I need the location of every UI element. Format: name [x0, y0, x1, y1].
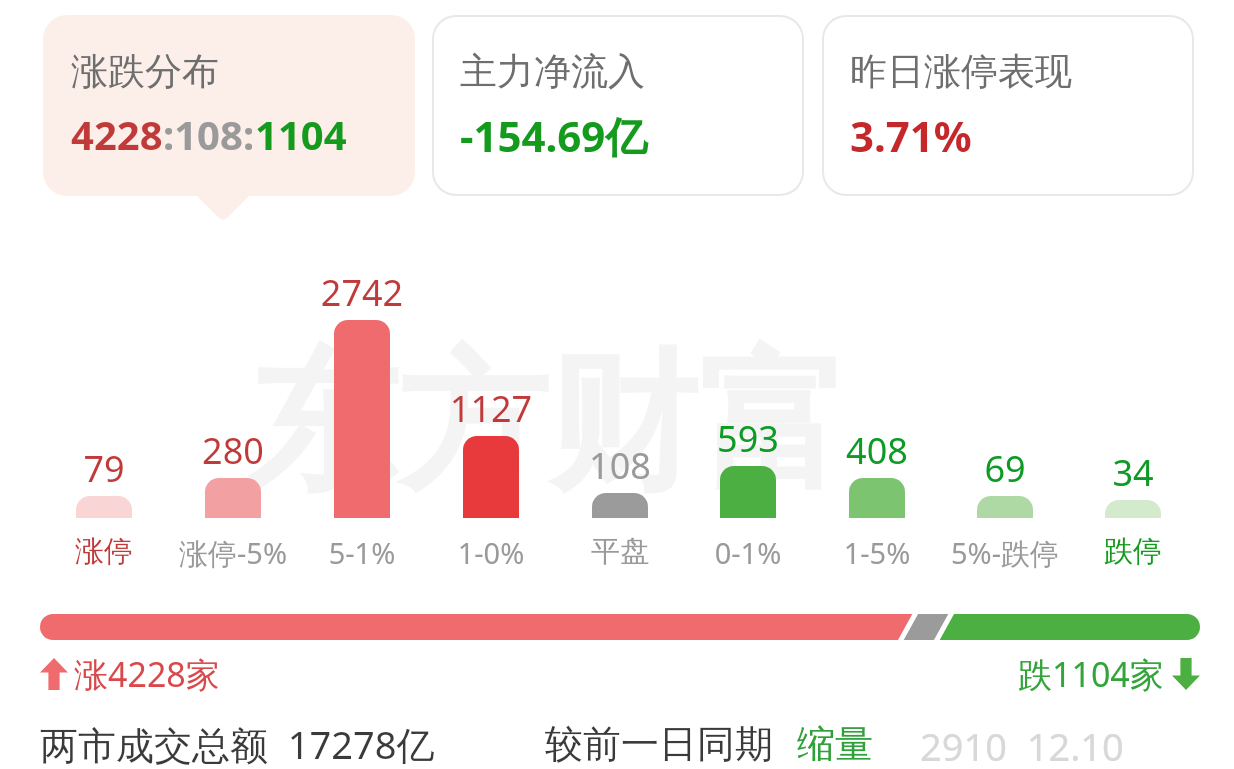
button[interactable] [1105, 500, 1161, 518]
button[interactable]: 0-1% [670, 533, 826, 572]
staticText: 涨4228家 [74, 651, 220, 697]
staticText: -154.69亿 [460, 107, 648, 164]
button[interactable]: 昨日涨停表现 [824, 17, 1192, 194]
staticText: 5%-跌停 [927, 533, 1083, 573]
staticText: 较前一日同期 [545, 720, 773, 768]
staticText: 108 [550, 441, 690, 490]
staticText: 东方财富 [248, 330, 848, 519]
staticText: 5-1% [284, 533, 440, 572]
staticText: 4228 [71, 107, 163, 161]
button[interactable]: 平盘 [542, 533, 698, 570]
staticText: 昨日涨停表现 [850, 48, 1072, 95]
button[interactable] [463, 436, 519, 518]
staticText: :108: [163, 107, 255, 161]
button[interactable] [592, 493, 648, 518]
button[interactable]: 涨停 [26, 533, 182, 570]
button[interactable]: 涨跌分布 [43, 15, 415, 196]
button[interactable]: 5%-跌停 [927, 533, 1083, 573]
button[interactable] [334, 320, 390, 518]
staticText: 2742 [292, 268, 432, 317]
staticText: 1-5% [799, 533, 955, 572]
staticText: 280 [163, 426, 303, 475]
other: Down [1172, 658, 1200, 690]
button[interactable] [76, 496, 132, 518]
button[interactable] [849, 478, 905, 518]
button[interactable]: 涨停-5% [155, 533, 311, 573]
staticText: 两市成交总额 17278亿 [40, 718, 435, 769]
other: Up [40, 658, 68, 690]
button[interactable]: 跌停 [1055, 533, 1211, 570]
staticText: 69 [935, 444, 1075, 493]
staticText: 平盘 [542, 533, 698, 570]
staticText: 408 [807, 426, 947, 475]
staticText: 3.71% [850, 107, 972, 164]
button[interactable] [40, 614, 1200, 640]
staticText: 0-1% [670, 533, 826, 572]
button[interactable]: 主力净流入 [434, 17, 802, 194]
button[interactable] [205, 478, 261, 518]
button[interactable]: 5-1% [284, 533, 440, 572]
staticText: 79 [34, 444, 174, 493]
staticText: 涨跌分布 [71, 48, 219, 95]
staticText: 2910 12.10 [920, 720, 1124, 769]
staticText: 34 [1063, 448, 1203, 497]
staticText: 1-0% [413, 533, 569, 572]
button[interactable] [977, 496, 1033, 518]
staticText: 主力净流入 [460, 48, 645, 95]
button[interactable] [720, 466, 776, 518]
staticText: 1127 [421, 384, 561, 433]
staticText: 跌停 [1055, 533, 1211, 570]
staticText: 缩量 [797, 720, 873, 768]
staticText: 涨停-5% [155, 533, 311, 573]
button[interactable]: 1-5% [799, 533, 955, 572]
button[interactable]: 1-0% [413, 533, 569, 572]
staticText: 1104 [255, 107, 347, 161]
staticText: 跌1104家 [1018, 651, 1164, 697]
staticText: 涨停 [26, 533, 182, 570]
staticText: 593 [678, 414, 818, 463]
